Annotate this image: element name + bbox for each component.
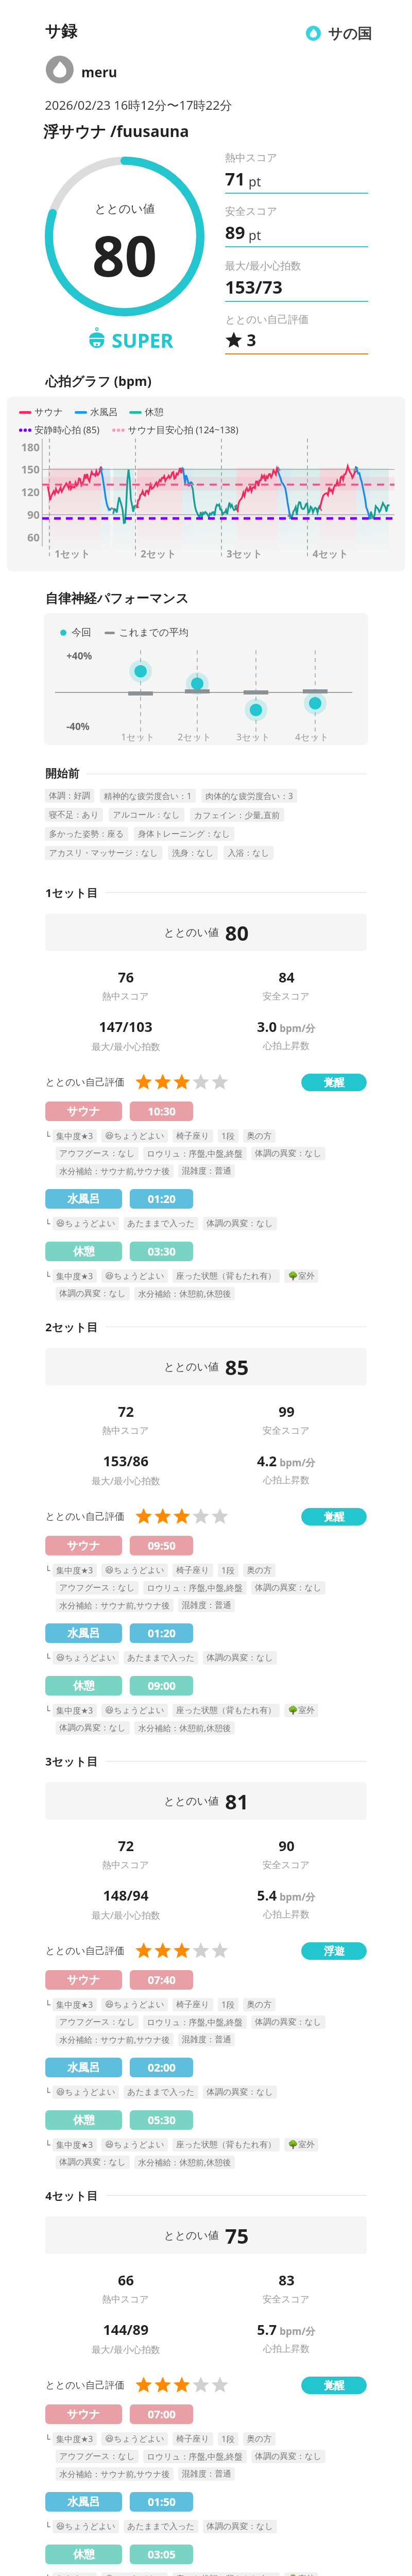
staticText: 5.7 [257,2320,277,2339]
staticText: 座った状態（背もたれ有） [176,1271,276,1281]
staticText: 09:00 [148,1679,176,1693]
staticText: 椅子座り [176,1565,210,1575]
staticText: pt [245,173,261,190]
button[interactable]: サウナ [45,1536,122,1555]
staticText: 身体トレーニング：なし [138,829,230,839]
staticText: └ [45,2088,50,2097]
staticText: 3 [247,329,256,351]
staticText: 集中度★3 [56,2433,93,2445]
button[interactable]: 覚醒 [301,1508,367,1526]
staticText: 1セット目 [45,885,98,900]
staticText: 71 [225,167,245,191]
staticText: ロウリュ：序盤,中盤,終盤 [147,1148,243,1159]
staticText: └ [45,2574,50,2576]
staticText: 浮遊 [324,1945,345,1958]
staticText: meru [81,63,117,81]
button[interactable]: 水風呂 [45,2492,122,2512]
button[interactable]: 覚醒 [301,1074,367,1091]
staticText: ととのい値 [164,1360,219,1374]
staticText: 精神的な疲労度合い：1 [104,790,192,802]
staticText: └ [45,2000,50,2010]
staticText: アウフグース：なし [59,1148,135,1159]
staticText: サウナ [35,406,63,418]
staticText: 1段 [221,1130,235,1142]
staticText: 水分補給：サウナ前,サウナ後 [59,1600,170,1611]
staticText: これまでの平均 [119,626,189,639]
staticText: ととのい自己評価 [45,1511,125,1523]
staticText: ととのい自己評価 [45,1945,125,1957]
staticText: 2026/02/23 16時12分〜17時22分 [45,96,232,113]
staticText: bpm/分 [277,1456,316,1469]
staticText: 安静時心拍 (85) [35,423,100,436]
staticText: 自律神経パフォーマンス [45,590,189,606]
staticText: 2セット目 [45,1319,98,1334]
staticText: アカスリ・マッサージ：なし [49,848,158,858]
staticText: 椅子座り [176,1999,210,2010]
button[interactable]: サウナ [45,2404,122,2424]
button[interactable]: 水風呂 [45,2058,122,2077]
staticText: カフェイン：少量,直前 [194,809,280,821]
staticText: 3セット目 [45,1753,98,1769]
staticText: 120 [16,485,40,500]
button[interactable]: 休憩 [45,2110,122,2130]
staticText: 72 [118,1836,134,1855]
button[interactable]: 休憩 [45,2545,122,2564]
staticText: 144/89 [103,2320,149,2339]
staticText: 入浴：なし [228,848,269,858]
button[interactable]: サウナ [45,1101,122,1121]
button[interactable]: 浮遊 [301,1942,367,1960]
button[interactable]: 水風呂 [45,1623,122,1643]
staticText: 😆ちょうどよい [105,1131,164,1141]
staticText: 奥の方 [247,1999,272,2010]
staticText: 集中度★3 [56,1270,93,1282]
staticText: 寝不足：あり [49,810,99,820]
staticText: 肉体的な疲労度合い：3 [205,790,293,802]
staticText: 奥の方 [247,1131,272,1141]
staticText: └ [45,1706,50,1716]
staticText: 体調の異変：なし [207,2087,273,2097]
staticText: 89 [225,221,245,244]
staticText: 07:40 [148,1973,176,1988]
staticText: 4セット [313,547,349,561]
button[interactable]: 覚醒 [301,2377,367,2394]
staticText: 01:20 [148,1626,176,1641]
staticText: └ [45,1566,50,1575]
staticText: 混雑度：普通 [182,1166,231,1176]
staticText: └ [45,1272,50,1281]
staticText: ととのい値 [45,201,204,216]
staticText: pt [245,226,261,244]
staticText: 81 [225,1787,249,1815]
staticText: 4.2 [257,1451,277,1470]
staticText: 奥の方 [247,2434,272,2444]
staticText: 今回 [72,626,91,639]
button[interactable]: サウナ [45,1970,122,1990]
staticText: 椅子座り [176,2434,210,2444]
staticText: あたままで入った [127,2521,195,2532]
staticText: 安全スコア [263,1859,310,1871]
staticText: 体調の異変：なし [207,1653,273,1663]
button[interactable]: 水風呂 [45,1189,122,1209]
staticText: ととのい値 [164,2229,219,2242]
staticText: 浮サウナ /fuusauna [43,121,189,142]
staticText: ととのい値 [164,1794,219,1808]
staticText: 90 [16,507,40,522]
staticText: 体調の異変：なし [59,2157,126,2167]
staticText: 体調の異変：なし [59,1289,126,1299]
staticText: └ [45,1219,50,1229]
button[interactable]: 休憩 [45,1242,122,1261]
staticText: SUPER [112,327,174,353]
staticText: 集中度★3 [56,1130,93,1142]
staticText: 153/73 [225,275,283,299]
staticText: 体調の異変：なし [207,1218,273,1229]
staticText: 01:20 [148,1192,176,1207]
staticText: アウフグース：なし [59,2017,135,2027]
staticText: 2セット [141,547,177,561]
staticText: 混雑度：普通 [182,1600,231,1611]
staticText: 熱中スコア [102,1859,149,1871]
staticText: 心拍上昇数 [263,2343,310,2355]
staticText: ととのい値 [164,926,219,939]
staticText: 安全スコア [225,205,278,218]
staticText: 😆ちょうどよい [105,1999,164,2010]
button[interactable]: 休憩 [45,1676,122,1696]
staticText: 休憩 [73,1679,95,1692]
